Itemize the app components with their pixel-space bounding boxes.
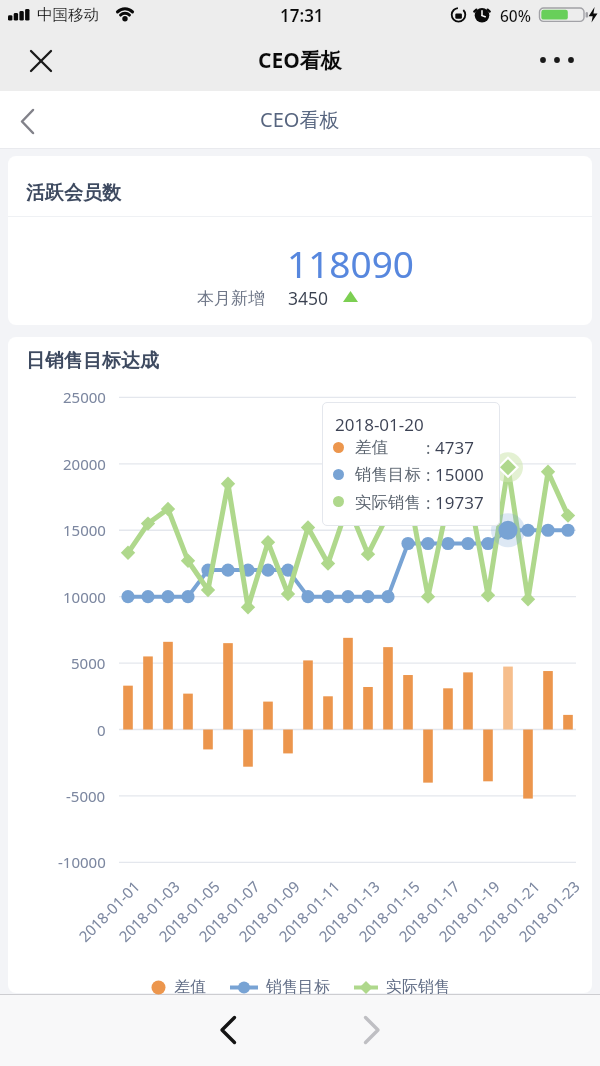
staticText: 销售目标 xyxy=(355,464,421,485)
button[interactable]: 实际销售 xyxy=(354,977,450,997)
staticText: 活跃会员数 xyxy=(26,181,121,205)
staticText: 3450 xyxy=(288,286,329,310)
staticText: 17:31 xyxy=(280,4,324,27)
staticText: 销售目标 xyxy=(266,977,330,997)
staticText: 差值 xyxy=(174,977,206,997)
button[interactable] xyxy=(206,1006,254,1054)
staticText: : xyxy=(426,491,431,513)
staticText: : xyxy=(426,436,431,458)
staticText: 2018-01-20 xyxy=(335,413,424,436)
staticText: 实际销售 xyxy=(355,492,421,513)
staticText: 60% xyxy=(500,5,531,26)
staticText: 日销售目标达成 xyxy=(26,349,159,373)
staticText: 15000 xyxy=(435,463,484,486)
button[interactable] xyxy=(347,1006,395,1054)
staticText: 本月新增 xyxy=(197,288,265,309)
staticText: 中国移动 xyxy=(37,5,99,25)
button[interactable] xyxy=(12,104,46,138)
staticText: 4737 xyxy=(435,436,474,459)
button[interactable] xyxy=(26,46,56,76)
staticText: CEO看板 xyxy=(258,46,342,75)
button[interactable]: 销售目标 xyxy=(230,977,330,997)
staticText: 19737 xyxy=(435,491,484,514)
button[interactable]: 差值 xyxy=(151,977,206,997)
staticText: 实际销售 xyxy=(386,977,450,997)
staticText: CEO看板 xyxy=(260,106,340,133)
staticText: 118090 xyxy=(287,238,414,286)
button[interactable] xyxy=(531,44,581,76)
staticText: 差值 xyxy=(355,437,388,458)
staticText: : xyxy=(426,463,431,485)
